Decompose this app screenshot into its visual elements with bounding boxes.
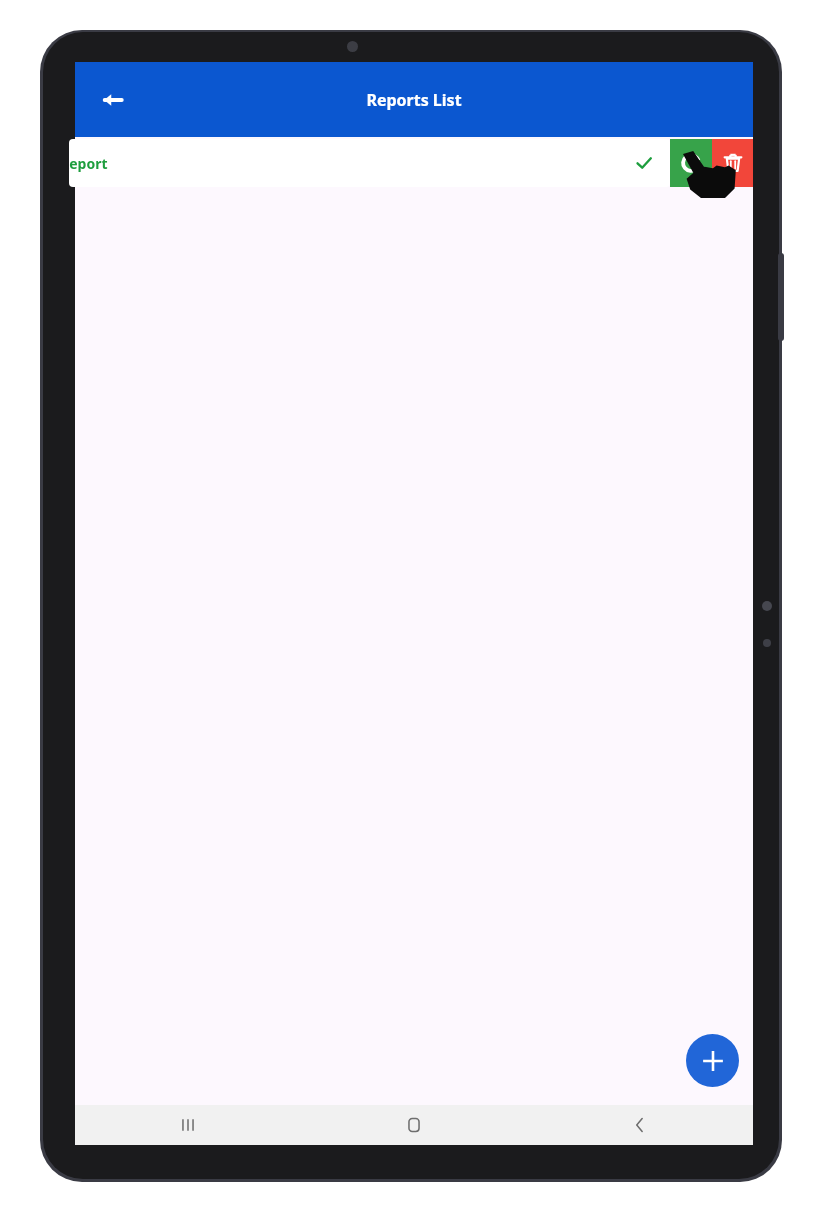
- staticText: Reports List: [366, 89, 462, 111]
- button[interactable]: Home: [301, 1105, 527, 1145]
- button[interactable]: Report: [69, 139, 670, 187]
- button[interactable]: Back: [89, 76, 137, 124]
- button[interactable]: Restore: [670, 139, 712, 187]
- button[interactable]: Recents: [75, 1105, 301, 1145]
- staticText: Report: [69, 154, 108, 173]
- button[interactable]: Add report: [686, 1034, 739, 1087]
- button[interactable]: Delete: [712, 139, 753, 187]
- button[interactable]: Back: [527, 1105, 753, 1145]
